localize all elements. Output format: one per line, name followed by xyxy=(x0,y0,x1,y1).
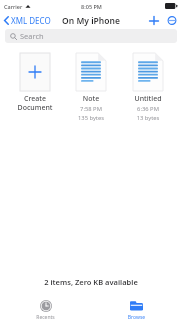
staticText: Carrier xyxy=(4,3,23,10)
staticText: Recents xyxy=(0,314,91,321)
button[interactable]: More options xyxy=(165,12,182,29)
button[interactable]: Browse xyxy=(91,298,182,323)
staticText: XML DECO xyxy=(11,15,51,26)
staticText: Create Document xyxy=(9,94,61,112)
staticText: 13 bytes xyxy=(122,114,174,122)
button[interactable]: Note xyxy=(65,51,117,124)
button[interactable]: XML DECO xyxy=(0,13,55,28)
button[interactable]: Recents xyxy=(0,298,91,323)
staticText: Untitled xyxy=(122,94,174,104)
staticText: 7:58 PM xyxy=(65,105,117,113)
staticText: Note xyxy=(65,94,117,104)
staticText: 8:05 PM xyxy=(81,3,102,10)
button[interactable]: Add xyxy=(145,12,163,29)
button[interactable]: Search xyxy=(5,29,177,43)
staticText: On My iPhone xyxy=(62,15,120,27)
staticText: 6:36 PM xyxy=(122,105,174,113)
button[interactable]: Create Document xyxy=(9,51,61,114)
staticText: 2 items, Zero KB available xyxy=(0,277,182,287)
staticText: Search xyxy=(20,31,44,41)
button[interactable]: Untitled xyxy=(122,51,174,124)
staticText: Browse xyxy=(91,314,182,321)
staticText: 135 bytes xyxy=(65,114,117,122)
